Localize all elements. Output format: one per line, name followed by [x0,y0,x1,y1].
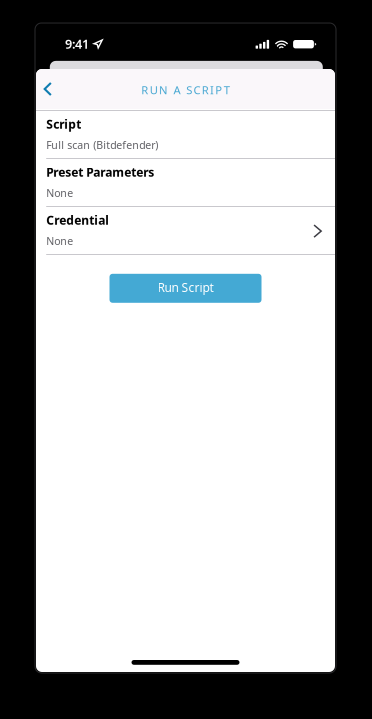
button[interactable]: Back [36,69,61,109]
staticText: Full scan (Bitdefender) [46,138,158,152]
staticText: Script [46,116,81,132]
staticText: RUN A SCRIPT [141,82,230,98]
staticText: Run Script [157,279,213,295]
staticText: None [46,186,73,200]
button[interactable]: Run Script [109,274,261,303]
staticText: Credential [46,212,109,228]
button[interactable]: Script [36,111,335,158]
staticText: None [46,234,73,248]
button[interactable]: Credential [36,207,335,254]
button[interactable]: Preset Parameters [36,159,335,206]
staticText: 9:41 [65,35,89,53]
staticText: Preset Parameters [46,164,154,180]
